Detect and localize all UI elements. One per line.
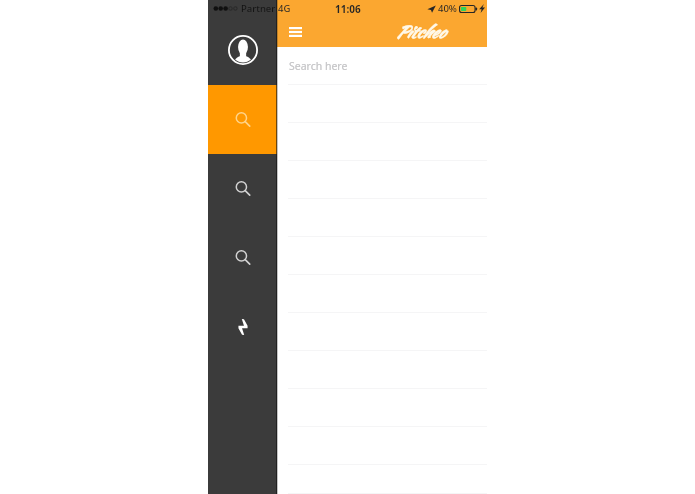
button[interactable] [277, 237, 487, 275]
button[interactable] [277, 199, 487, 237]
staticText: Partner [241, 2, 276, 15]
button[interactable]: Open navigation menu [283, 20, 307, 44]
staticText: Pitcheo [395, 20, 445, 44]
button[interactable]: Search [208, 223, 277, 292]
button[interactable] [277, 427, 487, 465]
staticText: 40% [438, 2, 457, 15]
button[interactable]: Search [208, 154, 277, 223]
staticText: 4G [278, 2, 291, 15]
staticText: 11:06 [335, 2, 361, 16]
button[interactable] [277, 85, 487, 123]
button[interactable] [277, 389, 487, 427]
button[interactable]: Activity [208, 292, 277, 361]
button[interactable] [277, 161, 487, 199]
button[interactable] [277, 123, 487, 161]
staticText: Search here [289, 59, 348, 73]
button[interactable] [277, 465, 487, 494]
button[interactable] [277, 351, 487, 389]
button[interactable] [277, 275, 487, 313]
button[interactable]: Search [208, 85, 277, 154]
button[interactable] [277, 313, 487, 351]
